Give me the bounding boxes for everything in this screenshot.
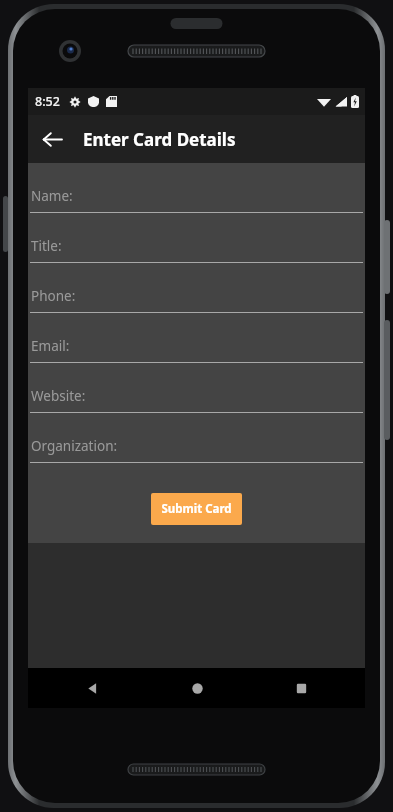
button[interactable]: Title: — [28, 230, 365, 280]
staticText: Email: — [31, 337, 70, 355]
staticText: Title: — [31, 237, 62, 255]
button[interactable]: Organization: — [28, 430, 365, 480]
staticText: Website: — [31, 387, 86, 405]
button[interactable]: Phone: — [28, 280, 365, 330]
staticText: Enter Card Details — [83, 128, 236, 151]
staticText: 8:52 — [35, 93, 60, 110]
button[interactable]: Back — [33, 120, 71, 158]
button[interactable]: Email: — [28, 330, 365, 380]
staticText: Submit Card — [161, 501, 232, 517]
button[interactable]: Recent apps — [279, 669, 323, 707]
button[interactable]: Website: — [28, 380, 365, 430]
button[interactable]: Back — [70, 669, 114, 707]
staticText: Name: — [31, 187, 73, 205]
button[interactable]: Home — [175, 669, 219, 707]
button[interactable]: Name: — [28, 180, 365, 230]
staticText: Phone: — [31, 287, 76, 305]
staticText: Organization: — [31, 437, 118, 455]
button[interactable]: Submit Card — [151, 493, 242, 525]
